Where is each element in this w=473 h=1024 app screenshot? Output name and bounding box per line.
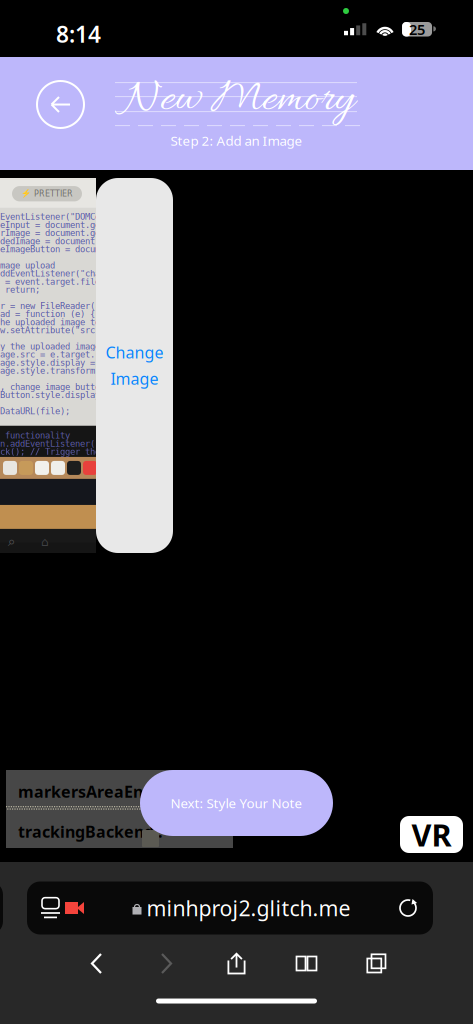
staticText: r = new FileReader(); bbox=[0, 301, 105, 311]
staticText: rImage = document.getElement bbox=[0, 228, 140, 238]
staticText: return; bbox=[0, 285, 40, 295]
staticText: VR bbox=[411, 814, 451, 855]
staticText: markersAreaEnabled bbox=[18, 781, 188, 802]
button[interactable]: Bookmarks bbox=[271, 941, 341, 985]
staticText: n.addEventListener("click", fu bbox=[0, 438, 150, 449]
button[interactable]: Change bbox=[96, 178, 173, 553]
staticText: Step 2: Add an Image bbox=[170, 132, 302, 149]
staticText: Change bbox=[105, 342, 163, 363]
staticText: he uploaded image to the AR pa bbox=[0, 317, 150, 327]
button[interactable]: Back bbox=[61, 941, 131, 985]
staticText: trackingBackend : bbox=[18, 821, 162, 842]
staticText: ⌂ bbox=[41, 535, 49, 548]
button[interactable]: Forward bbox=[131, 941, 201, 985]
staticText: 8:14 bbox=[56, 19, 101, 49]
staticText: minhproj2.glitch.me bbox=[146, 894, 350, 922]
button[interactable]: Tabs bbox=[341, 941, 411, 985]
staticText: Image bbox=[110, 368, 158, 389]
staticText: New Memory bbox=[123, 71, 354, 129]
button[interactable]: Next: Style Your Note bbox=[140, 770, 333, 836]
staticText: dedImage = document.getElem bbox=[0, 236, 135, 246]
staticText: ad = function (e) { bbox=[0, 309, 95, 319]
button[interactable]: Share bbox=[201, 941, 271, 985]
staticText: functionality bbox=[0, 430, 70, 441]
staticText: age.style.transform = "none"; bbox=[0, 366, 145, 376]
button[interactable]: minhproj2.glitch.me bbox=[27, 881, 433, 934]
staticText: age.style.display = "block"; bbox=[0, 357, 140, 368]
staticText: 25 bbox=[409, 19, 425, 39]
staticText: EventListener("DOMContentLoa bbox=[0, 212, 140, 222]
button[interactable]: VR bbox=[400, 816, 463, 853]
staticText: Button.style.display = "block" bbox=[0, 390, 150, 400]
staticText: ddEventListener("change", fu bbox=[0, 268, 140, 279]
staticText: age.src = e.target.result; bbox=[0, 349, 130, 360]
staticText: y the uploaded image bbox=[0, 341, 100, 351]
staticText: eInput = document.getElement bbox=[0, 220, 140, 230]
staticText: w.setAttribute("src", e.targe bbox=[0, 325, 145, 335]
staticText: Next: Style Your Note bbox=[170, 794, 302, 812]
staticText: ⚡ PRETTIER bbox=[21, 189, 73, 198]
staticText: ck(); // Trigger the file input bbox=[0, 447, 155, 457]
staticText: , change image button bbox=[0, 382, 105, 392]
staticText: ⌕ bbox=[8, 535, 15, 548]
staticText: eImageButton = document.getE bbox=[0, 244, 140, 254]
staticText: mage upload bbox=[0, 260, 55, 270]
staticText: = event.target.files[0]; bbox=[0, 276, 125, 287]
button[interactable]: Back bbox=[37, 81, 84, 128]
staticText: DataURL(file); bbox=[0, 406, 70, 416]
